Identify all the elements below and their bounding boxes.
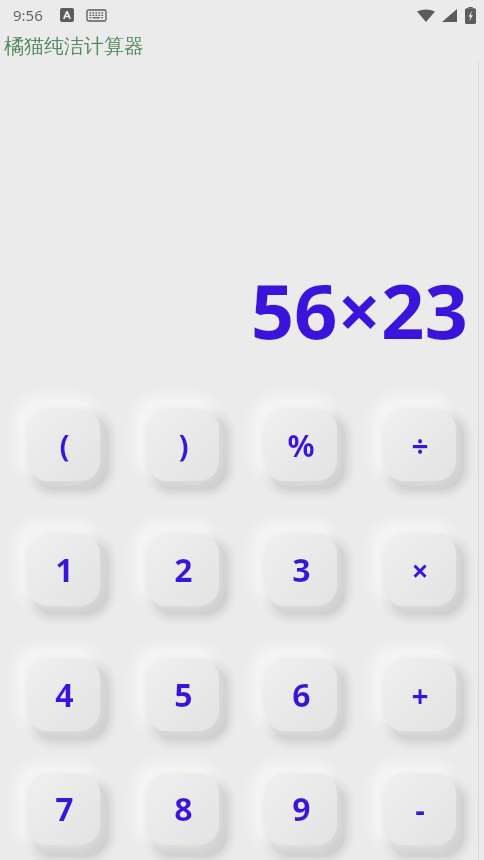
staticText: 2: [174, 548, 193, 592]
staticText: 9: [292, 787, 311, 831]
staticText: %: [287, 425, 315, 466]
staticText: 5: [174, 673, 193, 717]
button[interactable]: (: [9, 390, 119, 500]
button[interactable]: 5: [128, 640, 238, 750]
staticText: -: [415, 789, 425, 830]
button[interactable]: ×: [365, 515, 475, 625]
staticText: 8: [174, 787, 193, 831]
button[interactable]: 2: [128, 515, 238, 625]
staticText: 6: [292, 673, 311, 717]
staticText: 3: [292, 548, 311, 592]
staticText: ): [178, 425, 189, 466]
staticText: ×: [411, 550, 429, 591]
staticText: 9:56: [13, 5, 43, 25]
button[interactable]: 1: [9, 515, 119, 625]
button[interactable]: 7: [9, 757, 119, 860]
button[interactable]: 9: [246, 757, 356, 860]
staticText: ÷: [411, 425, 429, 466]
button[interactable]: ): [128, 390, 238, 500]
button[interactable]: 4: [9, 640, 119, 750]
staticText: 1: [55, 548, 74, 592]
button[interactable]: 8: [128, 757, 238, 860]
button[interactable]: ÷: [365, 390, 475, 500]
button[interactable]: 3: [246, 515, 356, 625]
staticText: 56×23: [250, 258, 468, 356]
staticText: (: [59, 425, 70, 466]
button[interactable]: +: [365, 640, 475, 750]
staticText: 橘猫纯洁计算器: [4, 34, 144, 59]
button[interactable]: -: [365, 757, 475, 860]
button[interactable]: 6: [246, 640, 356, 750]
staticText: 7: [55, 787, 74, 831]
button[interactable]: %: [246, 390, 356, 500]
staticText: +: [411, 675, 429, 716]
staticText: 4: [55, 673, 74, 717]
